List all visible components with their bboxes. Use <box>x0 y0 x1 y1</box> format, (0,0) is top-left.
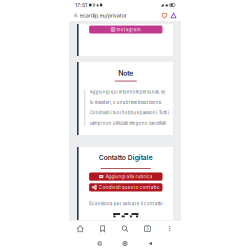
button[interactable]: Instagram <box>89 25 162 33</box>
button[interactable]: More options <box>159 225 181 232</box>
staticText: 3 <box>146 226 149 231</box>
staticText: 17:51 <box>75 2 87 8</box>
button[interactable]: Home <box>69 225 91 232</box>
button[interactable]: Back <box>138 242 163 245</box>
button[interactable]: Condividi questo contatto <box>89 183 162 191</box>
button[interactable]: Search <box>114 225 136 232</box>
staticText: Aggiungi alla rubrica <box>105 174 152 179</box>
staticText: ecardip.eu/privator <box>80 12 127 19</box>
staticText: Contatto Digitale <box>99 153 153 162</box>
staticText: Note <box>118 69 133 77</box>
button[interactable]: Tabs <box>136 225 159 232</box>
staticText: Aggiungi qui le tue note personali, se l… <box>90 89 169 126</box>
button[interactable]: Bookmarks <box>91 225 114 232</box>
button[interactable]: Recent apps <box>87 242 112 245</box>
staticText: Scansiona per salvare il contatto <box>89 201 163 206</box>
staticText: Instagram <box>117 27 141 32</box>
button[interactable]: Home <box>112 241 138 246</box>
staticText: Condividi questo contatto <box>99 184 160 190</box>
button[interactable]: Aggiungi alla rubrica <box>89 172 162 181</box>
